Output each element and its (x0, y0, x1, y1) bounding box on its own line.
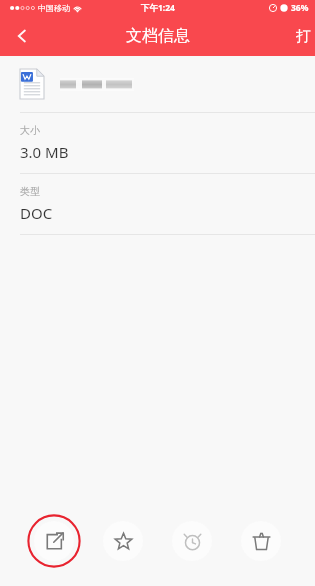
button[interactable] (0, 56, 315, 112)
staticText: 中国移动 (38, 3, 70, 13)
staticText: DOC (20, 203, 53, 223)
button[interactable]: 打 (296, 16, 315, 56)
staticText: 打 (296, 27, 311, 46)
button[interactable]: 收藏 (103, 521, 143, 561)
button[interactable]: 提醒 (172, 521, 212, 561)
button[interactable]: 删除 (241, 521, 281, 561)
staticText: 3.0 MB (20, 142, 69, 162)
button[interactable]: 打开 (34, 521, 74, 561)
staticText: 类型 (20, 185, 40, 198)
staticText: 大小 (20, 124, 40, 137)
button[interactable]: 类型 (0, 174, 315, 234)
staticText: 36% (291, 2, 309, 14)
staticText: 文档信息 (126, 26, 190, 46)
staticText: 下午1:24 (141, 2, 175, 14)
button[interactable]: 大小 (0, 113, 315, 173)
button[interactable]: 返回 (0, 16, 44, 56)
